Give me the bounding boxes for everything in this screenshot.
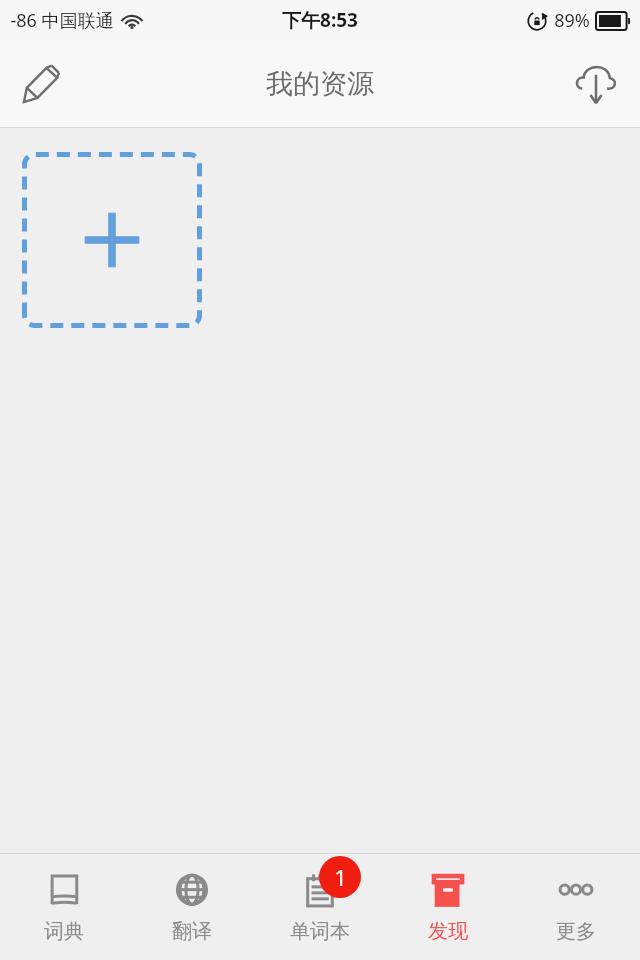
button[interactable]: 发现 (384, 853, 512, 960)
button[interactable]: 词典 (0, 853, 128, 960)
button[interactable]: 1 (256, 853, 384, 960)
staticText: 下午8:53 (282, 7, 358, 33)
staticText: 词典 (44, 919, 84, 944)
staticText: 发现 (428, 919, 468, 944)
button[interactable]: Add resource (22, 152, 202, 328)
staticText: 单词本 (290, 919, 350, 944)
staticText: 我的资源 (266, 67, 374, 101)
button[interactable]: Edit (6, 48, 78, 120)
staticText: 1 (334, 862, 347, 892)
staticText: -86 中国联通 (10, 8, 114, 33)
staticText: 更多 (556, 919, 596, 944)
button[interactable]: 更多 (512, 853, 640, 960)
button[interactable]: Download (560, 48, 632, 120)
staticText: 翻译 (172, 919, 212, 944)
staticText: 89% (554, 8, 590, 33)
button[interactable]: 翻译 (128, 853, 256, 960)
